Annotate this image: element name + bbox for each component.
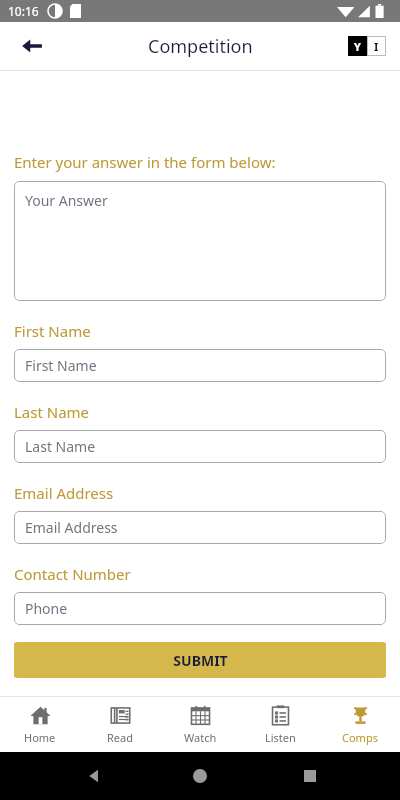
button[interactable]: Phone bbox=[14, 592, 386, 625]
staticText: Last Name bbox=[14, 402, 90, 422]
staticText: SUBMIT bbox=[173, 651, 228, 670]
staticText: Contact Number bbox=[14, 564, 131, 584]
button[interactable]: Last Name bbox=[14, 430, 386, 463]
staticText: Email Address bbox=[14, 483, 114, 503]
button[interactable]: SUBMIT bbox=[14, 642, 386, 678]
button[interactable]: Watch bbox=[160, 697, 240, 752]
button[interactable]: Your Answer bbox=[14, 181, 386, 301]
staticText: I bbox=[374, 39, 379, 54]
staticText: First Name bbox=[14, 321, 91, 341]
staticText: Comps bbox=[342, 730, 378, 745]
button[interactable]: YI logo bbox=[348, 36, 386, 56]
staticText: 10:16 bbox=[8, 3, 39, 19]
staticText: Home bbox=[24, 730, 56, 745]
staticText: Watch bbox=[184, 730, 217, 745]
button[interactable]: Back bbox=[12, 26, 52, 66]
staticText: Read bbox=[107, 730, 133, 745]
button[interactable]: Listen bbox=[240, 697, 320, 752]
staticText: Your Answer bbox=[25, 191, 108, 210]
button[interactable]: Read bbox=[80, 697, 160, 752]
button[interactable]: Email Address bbox=[14, 511, 386, 544]
button[interactable]: First Name bbox=[14, 349, 386, 382]
staticText: First Name bbox=[25, 356, 97, 375]
button[interactable]: Home bbox=[0, 697, 80, 752]
staticText: Last Name bbox=[25, 437, 96, 456]
staticText: Competition bbox=[148, 34, 253, 59]
staticText: Y bbox=[354, 39, 361, 54]
staticText: Listen bbox=[265, 730, 296, 745]
staticText: Enter your answer in the form below: bbox=[14, 152, 276, 172]
button[interactable]: Comps bbox=[320, 697, 400, 752]
staticText: Phone bbox=[25, 599, 68, 618]
staticText: Email Address bbox=[25, 518, 118, 537]
